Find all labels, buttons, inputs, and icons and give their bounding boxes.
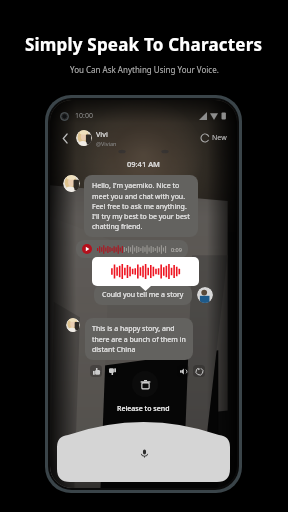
staticText: Release to send bbox=[117, 404, 170, 414]
button[interactable]: This is a happy story, and there are a b… bbox=[85, 318, 193, 360]
staticText: You Can Ask Anything Using Your Voice. bbox=[70, 64, 219, 75]
staticText: This is a happy story, and there are a b… bbox=[92, 324, 186, 354]
button[interactable]: Speak bbox=[177, 365, 189, 377]
button[interactable]: New bbox=[199, 131, 229, 145]
staticText: 09:41 AM bbox=[127, 159, 160, 169]
button[interactable]: Back bbox=[58, 131, 72, 145]
button[interactable]: Dislike bbox=[106, 365, 118, 377]
staticText: Could you tell me a story bbox=[102, 290, 184, 300]
staticText: New bbox=[212, 133, 227, 143]
button[interactable]: Hello, I'm yaemiko. Nice to meet you and… bbox=[84, 175, 198, 237]
button[interactable]: Like bbox=[90, 365, 102, 377]
button[interactable]: 0:09 bbox=[76, 240, 188, 258]
staticText: Vivi bbox=[96, 130, 108, 140]
staticText: @Vivian bbox=[96, 140, 117, 147]
button[interactable]: Regenerate bbox=[193, 365, 205, 377]
staticText: Simply Speak To Characters bbox=[25, 33, 263, 56]
button[interactable]: Microphone bbox=[133, 442, 155, 464]
staticText: 0:09 bbox=[171, 246, 182, 253]
button[interactable]: Delete bbox=[132, 371, 158, 397]
button[interactable]: Could you tell me a story bbox=[94, 285, 192, 305]
staticText: Hello, I'm yaemiko. Nice to meet you and… bbox=[92, 181, 190, 231]
staticText: 10:00 bbox=[75, 111, 93, 121]
